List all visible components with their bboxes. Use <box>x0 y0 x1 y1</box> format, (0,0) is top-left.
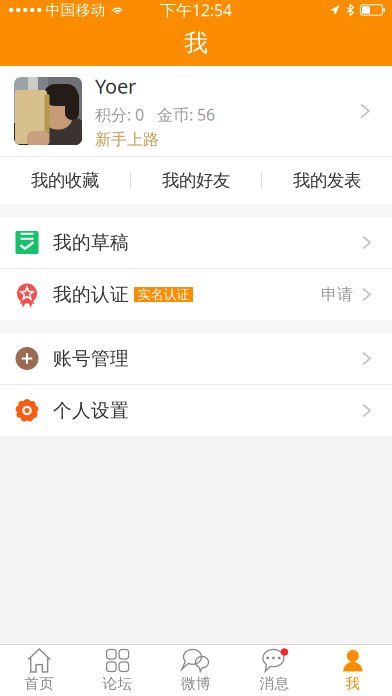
staticText: 我的发表 <box>293 170 361 191</box>
button[interactable]: 我的草稿 <box>0 217 392 268</box>
staticText: 我 <box>345 674 360 692</box>
button[interactable]: 个人设置 <box>0 385 392 436</box>
button[interactable]: 我 <box>314 645 392 696</box>
button[interactable]: 首页 <box>0 645 78 696</box>
button[interactable]: Yoer <box>0 66 392 156</box>
staticText: 金币: 56 <box>157 104 215 125</box>
staticText: 实名认证 <box>137 286 189 303</box>
staticText: 论坛 <box>103 674 133 692</box>
button[interactable]: 微博 <box>157 645 235 696</box>
staticText: 我的草稿 <box>53 231 129 254</box>
button[interactable]: 消息 <box>235 645 314 696</box>
staticText: 中国移动 <box>45 1 105 19</box>
staticText: 积分: 0 <box>95 104 144 125</box>
button[interactable]: 我的发表 <box>262 157 392 204</box>
staticText: 我的收藏 <box>31 170 99 191</box>
staticText: 首页 <box>24 674 54 692</box>
button[interactable]: 我的好友 <box>131 157 261 204</box>
staticText: Yoer <box>95 73 136 99</box>
staticText: 消息 <box>259 674 289 692</box>
button[interactable]: 论坛 <box>78 645 157 696</box>
staticText: 下午12:54 <box>160 0 232 21</box>
button[interactable]: 账号管理 <box>0 333 392 384</box>
staticText: 新手上路 <box>95 130 159 149</box>
staticText: 我 <box>184 28 208 58</box>
staticText: 我的好友 <box>162 170 230 191</box>
staticText: 微博 <box>181 674 211 692</box>
button[interactable]: 我的收藏 <box>0 157 130 204</box>
staticText: 个人设置 <box>53 399 129 422</box>
button[interactable]: 我的认证 <box>0 269 392 320</box>
staticText: 我的认证 <box>53 283 129 306</box>
staticText: 账号管理 <box>53 347 129 370</box>
staticText: 申请 <box>321 285 353 304</box>
